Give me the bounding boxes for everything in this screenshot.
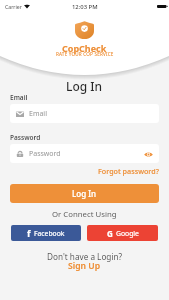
- staticText: Carrier: [5, 3, 22, 10]
- button[interactable]: Sign Up: [68, 260, 101, 272]
- button[interactable]: Show password: [143, 149, 153, 159]
- button[interactable]: Forgot password?: [98, 166, 159, 176]
- staticText: 12:03 PM: [72, 3, 98, 11]
- button[interactable]: Password: [10, 144, 159, 163]
- staticText: G: [107, 228, 113, 239]
- staticText: Log In: [72, 188, 97, 199]
- button[interactable]: G: [87, 225, 158, 241]
- button[interactable]: Log In: [10, 184, 159, 203]
- staticText: Or Connect Using: [52, 209, 117, 220]
- button[interactable]: f: [11, 225, 81, 241]
- staticText: RATE YOUR COP SERVICE: [56, 51, 114, 57]
- staticText: Email: [10, 93, 28, 102]
- button[interactable]: Email: [10, 104, 159, 123]
- staticText: Don't have a Login?: [47, 251, 123, 262]
- staticText: Password: [10, 133, 41, 142]
- staticText: Facebook: [34, 229, 65, 238]
- staticText: Email: [29, 109, 47, 119]
- staticText: Log In: [66, 78, 103, 94]
- staticText: Google: [116, 229, 139, 238]
- staticText: CopCheck: [62, 42, 107, 54]
- staticText: f: [27, 227, 31, 239]
- staticText: Password: [29, 149, 61, 159]
